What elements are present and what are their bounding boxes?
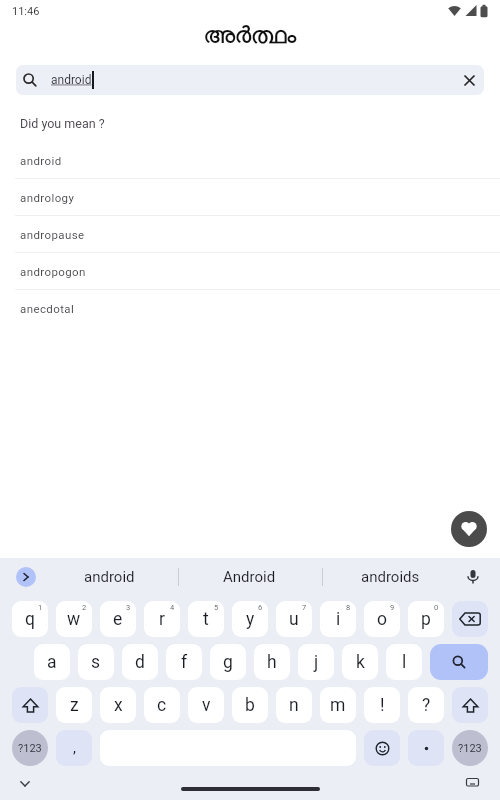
staticText: w xyxy=(67,609,81,630)
button[interactable]: f xyxy=(166,644,202,680)
button[interactable] xyxy=(452,687,488,723)
staticText: g xyxy=(223,652,233,673)
button[interactable]: z xyxy=(56,687,92,723)
button[interactable]: d xyxy=(122,644,158,680)
button[interactable]: k xyxy=(342,644,378,680)
staticText: u xyxy=(289,609,299,630)
staticText: b xyxy=(245,695,255,716)
button[interactable]: m xyxy=(320,687,356,723)
button[interactable]: j xyxy=(298,644,334,680)
button[interactable]: i xyxy=(320,601,356,637)
button[interactable] xyxy=(364,730,400,766)
staticText: d xyxy=(135,652,145,673)
staticText: Android xyxy=(223,568,276,586)
staticText: k xyxy=(356,652,365,673)
staticText: 1 xyxy=(38,603,43,612)
staticText: 9 xyxy=(390,603,395,612)
staticText: 8 xyxy=(346,603,351,612)
staticText: android xyxy=(51,73,92,87)
staticText: 3 xyxy=(126,603,131,612)
staticText: ! xyxy=(380,695,385,716)
button[interactable]: anecdotal xyxy=(0,294,500,322)
button[interactable]: t xyxy=(188,601,224,637)
button[interactable]: e xyxy=(100,601,136,637)
staticText: android xyxy=(20,154,62,167)
button[interactable]: android xyxy=(44,558,174,596)
staticText: h xyxy=(267,652,277,673)
staticText: a xyxy=(47,652,57,673)
staticText: n xyxy=(289,695,299,716)
staticText: f xyxy=(181,652,188,673)
button[interactable] xyxy=(16,567,36,587)
button[interactable]: android xyxy=(0,146,500,174)
button[interactable]: s xyxy=(78,644,114,680)
staticText: 0 xyxy=(434,603,439,612)
staticText: x xyxy=(114,695,123,716)
staticText: 2 xyxy=(82,603,87,612)
button[interactable]: a xyxy=(34,644,70,680)
button[interactable]: h xyxy=(254,644,290,680)
button[interactable]: andropogon xyxy=(0,257,500,285)
button[interactable]: b xyxy=(232,687,268,723)
button[interactable]: w xyxy=(56,601,92,637)
staticText: r xyxy=(159,609,165,630)
button[interactable]: q xyxy=(12,601,48,637)
staticText: e xyxy=(113,609,123,630)
button[interactable] xyxy=(12,687,48,723)
button[interactable] xyxy=(430,644,488,680)
button[interactable]: c xyxy=(144,687,180,723)
staticText: anecdotal xyxy=(20,302,75,315)
button[interactable]: g xyxy=(210,644,246,680)
staticText: 4 xyxy=(170,603,175,612)
staticText: v xyxy=(202,695,211,716)
staticText: j xyxy=(314,652,319,673)
button[interactable]: ?123 xyxy=(452,730,488,766)
staticText: y xyxy=(246,609,255,630)
staticText: Did you mean ? xyxy=(20,116,105,131)
button[interactable]: v xyxy=(188,687,224,723)
button[interactable]: y xyxy=(232,601,268,637)
staticText: ?123 xyxy=(458,742,482,755)
button[interactable]: androids xyxy=(328,558,452,596)
button[interactable]: , xyxy=(56,730,92,766)
button[interactable]: ! xyxy=(364,687,400,723)
button[interactable] xyxy=(451,511,487,547)
staticText: 5 xyxy=(214,603,219,612)
staticText: andropogon xyxy=(20,265,86,278)
button[interactable]: ?123 xyxy=(12,730,48,766)
staticText: z xyxy=(70,695,79,716)
button[interactable]: p xyxy=(408,601,444,637)
button[interactable]: r xyxy=(144,601,180,637)
staticText: q xyxy=(25,609,35,630)
staticText: o xyxy=(377,609,387,630)
button[interactable]: ? xyxy=(408,687,444,723)
staticText: l xyxy=(402,652,407,673)
staticText: , xyxy=(73,739,76,757)
staticText: ? xyxy=(422,695,431,716)
staticText: p xyxy=(421,609,431,630)
staticText: ?123 xyxy=(18,742,42,755)
staticText: 7 xyxy=(302,603,307,612)
staticText: m xyxy=(330,695,346,716)
button[interactable]: android xyxy=(16,65,484,95)
button[interactable] xyxy=(408,730,444,766)
button[interactable] xyxy=(457,68,481,92)
button[interactable]: andrology xyxy=(0,183,500,211)
staticText: android xyxy=(84,568,135,586)
button[interactable] xyxy=(461,565,485,589)
staticText: അർത്ഥം xyxy=(204,25,297,48)
button[interactable]: Android xyxy=(184,558,314,596)
button[interactable]: u xyxy=(276,601,312,637)
button[interactable]: andropause xyxy=(0,220,500,248)
button[interactable]: l xyxy=(386,644,422,680)
staticText: 6 xyxy=(258,603,263,612)
button[interactable]: n xyxy=(276,687,312,723)
button[interactable]: o xyxy=(364,601,400,637)
button[interactable]: x xyxy=(100,687,136,723)
staticText: andropause xyxy=(20,228,85,241)
staticText: i xyxy=(336,609,341,630)
staticText: t xyxy=(203,609,209,630)
button[interactable] xyxy=(452,601,488,637)
staticText: andrology xyxy=(20,191,75,204)
